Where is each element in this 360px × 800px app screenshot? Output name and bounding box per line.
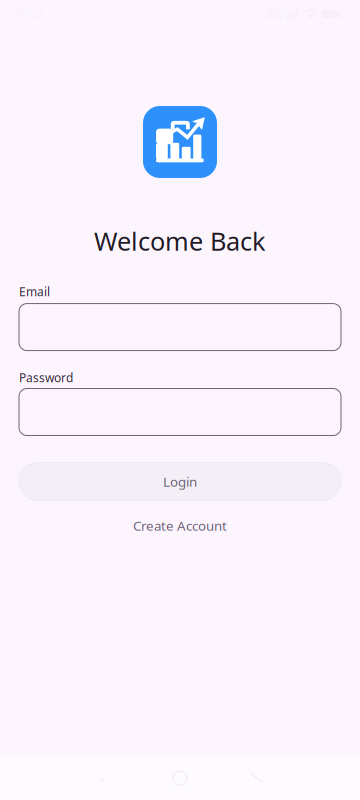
staticText: Welcome Back <box>94 224 266 258</box>
button[interactable]: Create Account <box>19 511 341 539</box>
button[interactable]: Home <box>171 757 189 799</box>
staticText: Login <box>163 473 197 490</box>
staticText: Email <box>19 284 50 299</box>
staticText: Create Account <box>133 517 227 534</box>
button[interactable]: Login <box>19 462 341 500</box>
staticText: Password <box>19 370 73 385</box>
